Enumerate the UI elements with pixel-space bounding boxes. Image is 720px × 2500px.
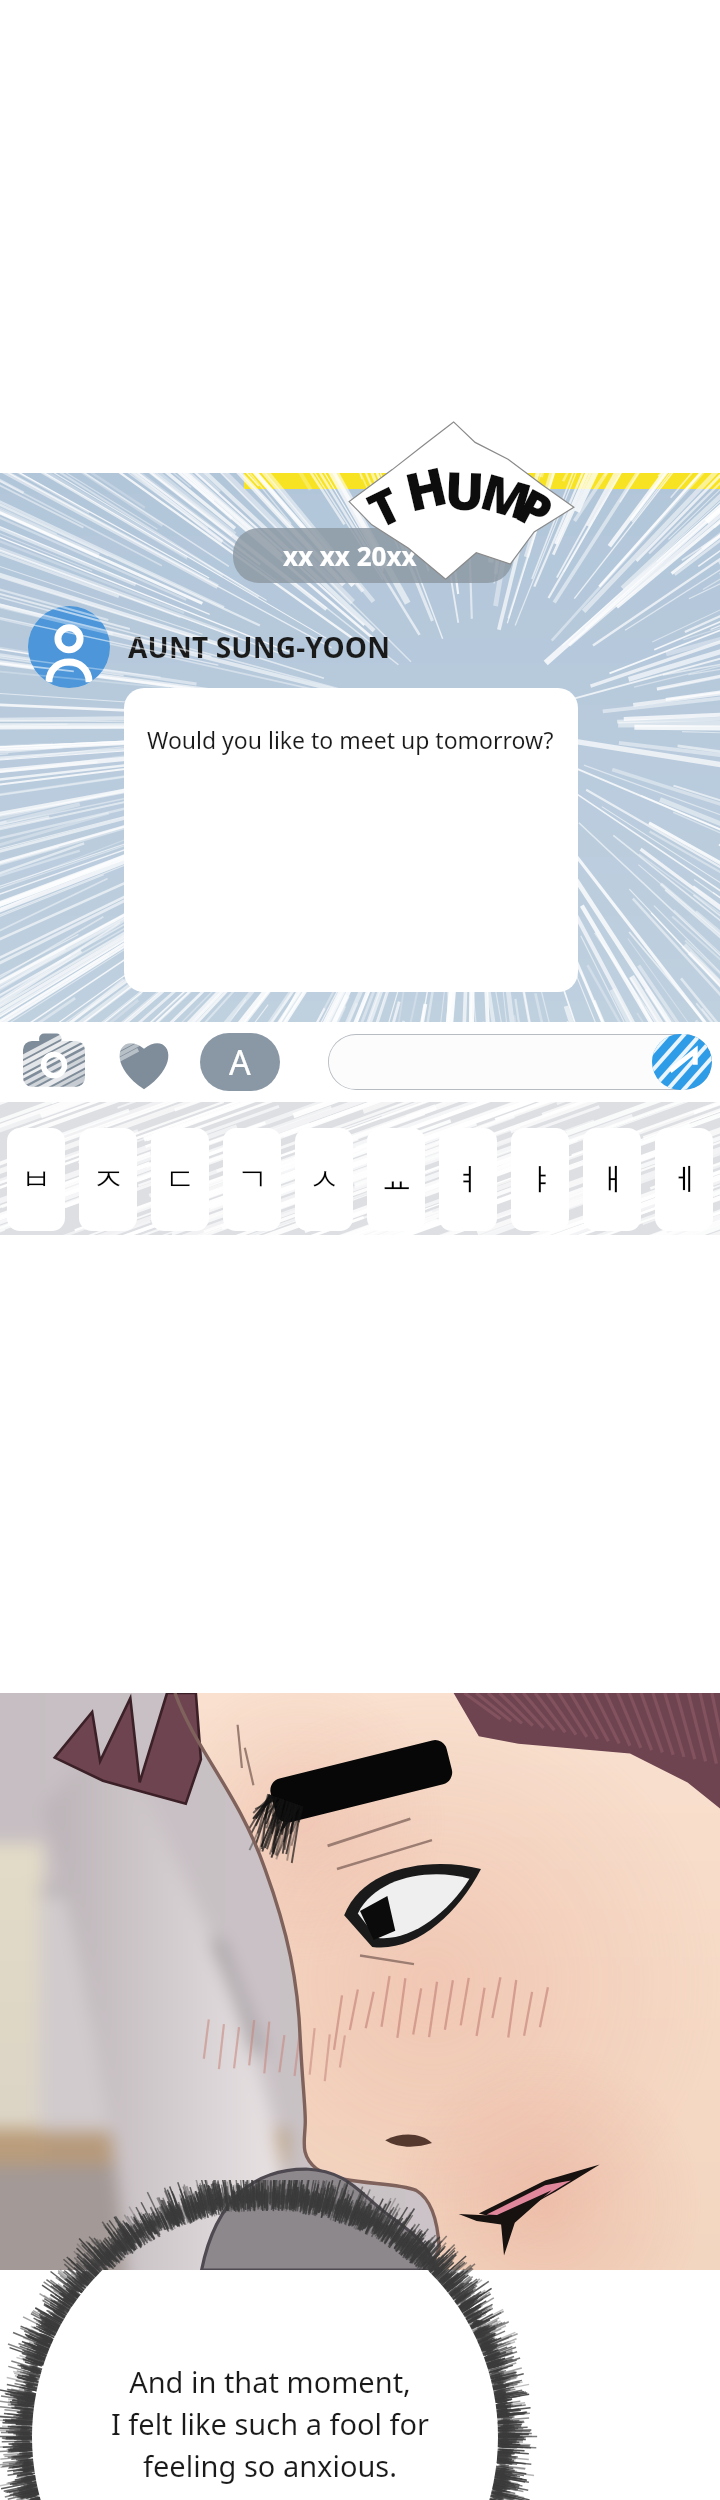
staticText: xx xx 20xx bbox=[283, 538, 417, 573]
button[interactable]: Send bbox=[328, 1034, 712, 1090]
button[interactable]: ㄷ bbox=[151, 1128, 209, 1231]
button[interactable]: Send bbox=[652, 1034, 712, 1090]
button[interactable]: Camera bbox=[20, 1028, 88, 1096]
button[interactable]: ㅑ bbox=[511, 1128, 569, 1231]
staticText: Would you like to meet up tomorrow? bbox=[147, 724, 554, 755]
button[interactable]: ㅛ bbox=[367, 1128, 425, 1231]
staticText: T bbox=[357, 471, 412, 542]
staticText: P bbox=[507, 472, 564, 544]
button[interactable]: ㅈ bbox=[79, 1128, 137, 1231]
staticText: ㄷ bbox=[165, 1160, 196, 1199]
staticText: U bbox=[444, 453, 486, 526]
staticText: H bbox=[398, 448, 453, 527]
staticText: ㅔ bbox=[669, 1160, 700, 1199]
staticText: And in that moment, I felt like such a f… bbox=[65, 2362, 475, 2485]
staticText: ㅑ bbox=[525, 1160, 556, 1199]
button[interactable]: AUNT SUNG-YOON bbox=[28, 606, 391, 688]
staticText: M bbox=[474, 457, 539, 535]
staticText: ㅕ bbox=[453, 1160, 484, 1199]
button[interactable]: xx xx 20xx bbox=[233, 528, 513, 583]
button[interactable]: ㅕ bbox=[439, 1128, 497, 1231]
staticText: ㅂ bbox=[21, 1160, 52, 1199]
staticText: ㅛ bbox=[381, 1160, 412, 1199]
button[interactable]: Heart sticker bbox=[110, 1028, 178, 1096]
staticText: ㅐ bbox=[597, 1160, 628, 1199]
staticText: ㅈ bbox=[93, 1160, 124, 1199]
button[interactable]: ㅂ bbox=[7, 1128, 65, 1231]
staticText: AUNT SUNG-YOON bbox=[128, 628, 391, 666]
button[interactable]: ㅅ bbox=[295, 1128, 353, 1231]
button[interactable]: Text style bbox=[200, 1033, 280, 1091]
staticText: ㅅ bbox=[309, 1160, 340, 1199]
button[interactable]: ㄱ bbox=[223, 1128, 281, 1231]
button[interactable]: ㅔ bbox=[655, 1128, 713, 1231]
staticText: A bbox=[229, 1039, 251, 1085]
staticText: ㄱ bbox=[237, 1160, 268, 1199]
button[interactable]: ㅐ bbox=[583, 1128, 641, 1231]
button[interactable]: Would you like to meet up tomorrow? bbox=[124, 688, 578, 992]
